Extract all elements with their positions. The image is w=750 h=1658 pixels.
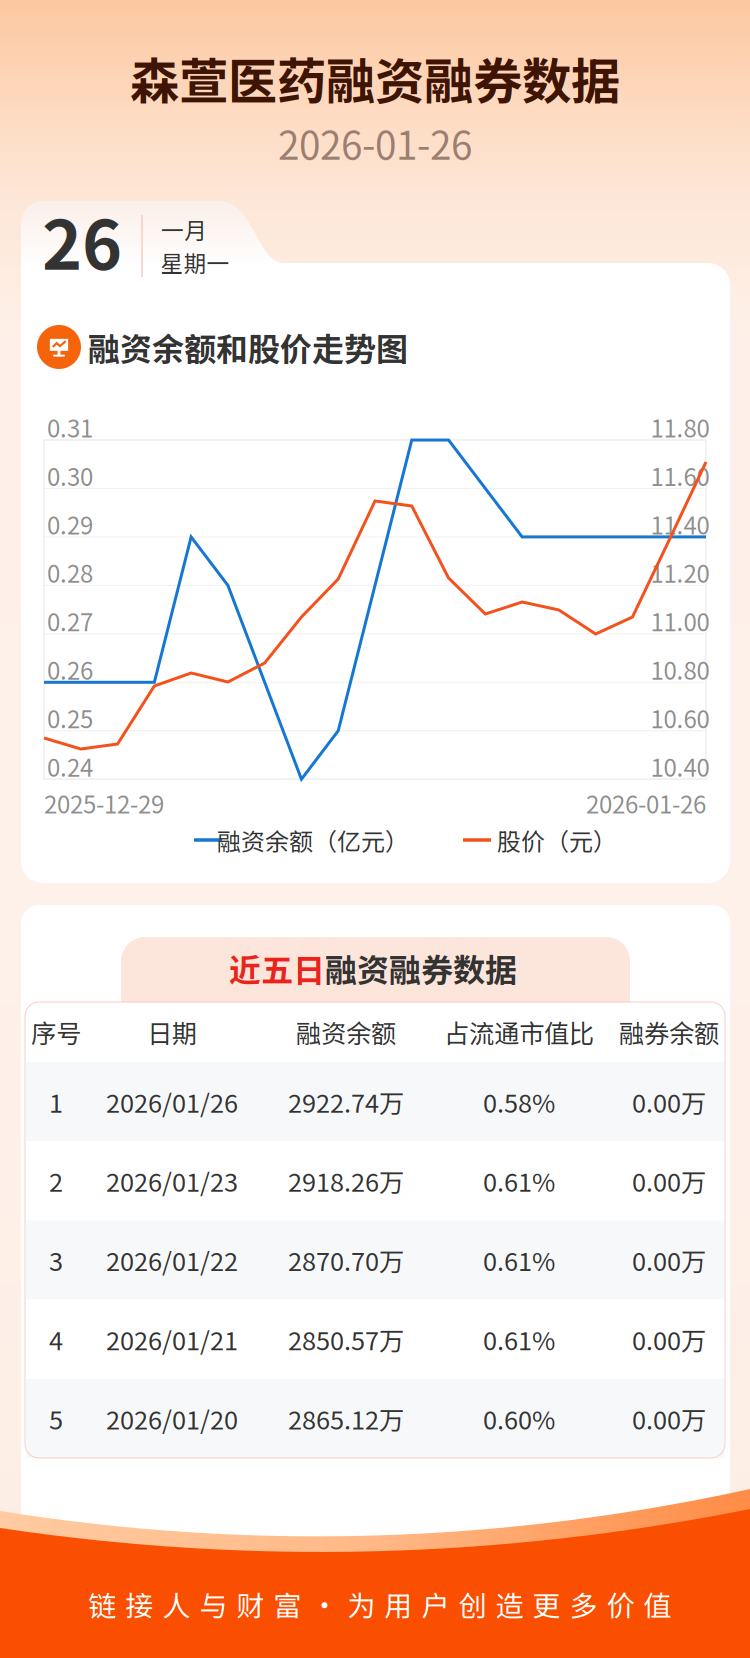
staticText: 10.60 — [650, 700, 709, 735]
staticText: 11.00 — [650, 603, 709, 638]
staticText: 3 — [49, 1242, 63, 1278]
staticText: 0.30 — [47, 458, 93, 493]
staticText: 2026/01/23 — [106, 1162, 238, 1199]
staticText: 11.40 — [650, 506, 709, 541]
staticText: 2026/01/20 — [106, 1400, 238, 1437]
staticText: 0.58% — [483, 1083, 555, 1120]
staticText: 0.61% — [483, 1321, 555, 1358]
staticText: 一月 — [161, 213, 207, 245]
staticText: 2918.26万 — [288, 1162, 404, 1199]
staticText: 0.00万 — [632, 1321, 706, 1358]
staticText: 0.26 — [47, 652, 93, 687]
staticText: 融资余额（亿元） — [217, 823, 409, 857]
staticText: 0.31 — [47, 410, 93, 444]
staticText: 0.25 — [47, 700, 93, 735]
staticText: 融资余额 — [296, 1014, 396, 1050]
staticText: 0.00万 — [632, 1083, 706, 1120]
staticText: 5 — [49, 1400, 63, 1437]
staticText: 2 — [49, 1162, 63, 1199]
staticText: 2850.57万 — [288, 1321, 404, 1358]
staticText: 0.24 — [47, 749, 93, 784]
staticText: 0.61% — [483, 1242, 555, 1278]
staticText: 2026/01/26 — [106, 1083, 238, 1120]
staticText: 0.27 — [47, 603, 93, 638]
staticText: 序号 — [31, 1014, 81, 1050]
staticText: 近五日 — [229, 945, 325, 991]
staticText: 森萱医药融资融券数据 — [130, 42, 620, 114]
staticText: 0.00万 — [632, 1242, 706, 1278]
staticText: 占流通市值比 — [444, 1014, 594, 1050]
staticText: 2026-01-26 — [586, 786, 706, 820]
staticText: 1 — [49, 1083, 63, 1120]
staticText: 26 — [42, 191, 122, 289]
staticText: 0.60% — [483, 1400, 555, 1437]
staticText: 星期一 — [160, 246, 229, 278]
staticText: 2025-12-29 — [44, 786, 164, 820]
staticText: 4 — [49, 1321, 63, 1358]
staticText: 11.80 — [650, 410, 709, 444]
staticText: 2026/01/22 — [106, 1242, 238, 1278]
staticText: 2026-01-26 — [278, 115, 472, 171]
staticText: 0.00万 — [632, 1162, 706, 1199]
staticText: 融资余额和股价走势图 — [88, 324, 408, 370]
staticText: 11.20 — [650, 555, 709, 590]
staticText: 链接人与财富·为用户创造更多价值 — [88, 1584, 671, 1624]
staticText: 11.60 — [650, 458, 709, 493]
staticText: 0.00万 — [632, 1400, 706, 1437]
staticText: 2870.70万 — [288, 1242, 404, 1278]
staticText: 2865.12万 — [288, 1400, 404, 1437]
staticText: 股价（元） — [497, 823, 617, 857]
staticText: 融券余额 — [619, 1014, 719, 1050]
staticText: 2026/01/21 — [106, 1321, 238, 1358]
staticText: 0.29 — [47, 506, 93, 541]
staticText: 0.28 — [47, 555, 93, 590]
staticText: 融资融券数据 — [325, 945, 517, 991]
staticText: 10.40 — [650, 749, 709, 784]
staticText: 日期 — [147, 1014, 197, 1050]
staticText: 0.61% — [483, 1162, 555, 1199]
staticText: 10.80 — [650, 652, 709, 687]
staticText: 2922.74万 — [288, 1083, 404, 1120]
